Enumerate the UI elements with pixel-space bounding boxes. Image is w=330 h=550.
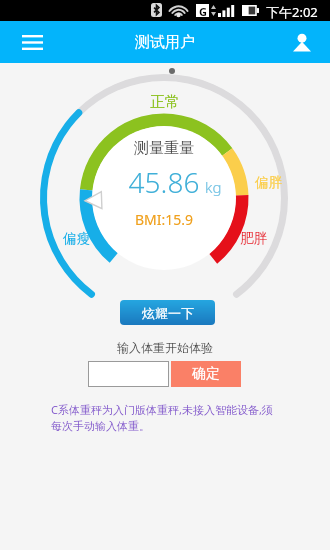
- staticText: 炫耀一下: [142, 305, 194, 321]
- button[interactable]: 炫耀一下: [120, 300, 215, 325]
- staticText: BMI:15.9: [0, 210, 329, 229]
- staticText: 输入体重开始体验: [0, 340, 330, 355]
- staticText: 测试用户: [135, 33, 195, 52]
- staticText: kg: [205, 177, 222, 197]
- staticText: C系体重秤为入门版体重秤,未接入智能设备,须每次手动输入体重。: [51, 402, 279, 433]
- button[interactable]: 确定: [171, 361, 241, 387]
- button[interactable]: [88, 361, 169, 387]
- staticText: 偏瘦: [63, 230, 90, 247]
- staticText: 45.86: [0, 163, 329, 201]
- staticText: G: [199, 4, 207, 17]
- button[interactable]: Menu: [15, 25, 49, 59]
- staticText: 下午2:02: [266, 3, 318, 21]
- staticText: 测量重量: [0, 139, 329, 158]
- staticText: 确定: [192, 365, 220, 383]
- staticText: 正常: [150, 93, 180, 112]
- staticText: 肥胖: [240, 230, 267, 247]
- staticText: 偏胖: [255, 174, 282, 191]
- button[interactable]: Profile: [285, 25, 319, 59]
